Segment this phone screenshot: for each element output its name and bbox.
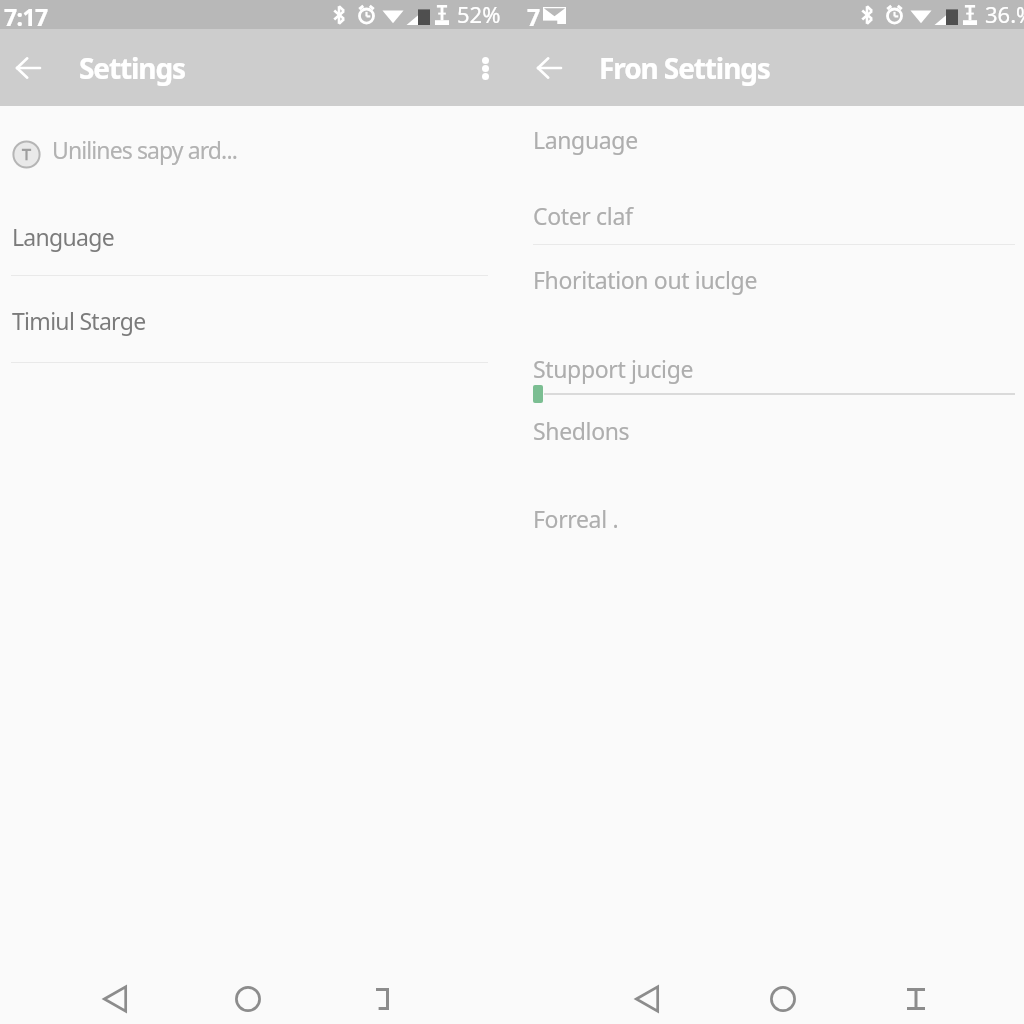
button[interactable]: Home — [770, 986, 796, 1012]
button[interactable]: Fhoritation out iuclge — [512, 263, 1024, 295]
button[interactable]: Language — [0, 193, 512, 276]
button[interactable]: Forreal . — [512, 502, 1024, 534]
button[interactable]: Language — [512, 123, 1024, 155]
button[interactable]: Back — [4, 44, 52, 92]
button[interactable]: Recent apps — [369, 986, 395, 1012]
button[interactable]: Back — [634, 986, 660, 1012]
button[interactable]: Back — [102, 986, 128, 1012]
button[interactable]: Back — [525, 44, 573, 92]
staticText: Settings — [79, 49, 185, 87]
staticText: Fron Settings — [599, 49, 770, 87]
staticText: Language — [12, 221, 114, 252]
staticText: 36.% — [985, 0, 1024, 28]
button[interactable]: Shedlons — [512, 414, 1024, 446]
staticText: Coter claf — [533, 200, 633, 231]
staticText: 52% — [457, 0, 501, 28]
button[interactable]: Coter claf — [512, 199, 1024, 231]
staticText: Shedlons — [533, 415, 630, 446]
staticText: Timiul Starge — [12, 305, 146, 336]
staticText: Unilines sapy ard... — [52, 134, 237, 165]
button[interactable]: Timiul Starge — [0, 276, 512, 363]
button[interactable]: Support level slider — [512, 383, 1024, 405]
button[interactable]: Stupport jucige — [512, 352, 1024, 384]
staticText: Forreal . — [533, 503, 619, 534]
button[interactable]: Unilines sapy ard... — [0, 106, 512, 193]
staticText: 7:17 — [4, 1, 48, 30]
staticText: Fhoritation out iuclge — [533, 264, 758, 295]
staticText: Stupport jucige — [533, 353, 694, 384]
staticText: Language — [533, 124, 638, 155]
button[interactable]: More options — [463, 46, 507, 90]
button[interactable]: Home — [235, 986, 261, 1012]
button[interactable]: Recent apps — [903, 986, 929, 1012]
staticText: 7 — [527, 1, 540, 30]
